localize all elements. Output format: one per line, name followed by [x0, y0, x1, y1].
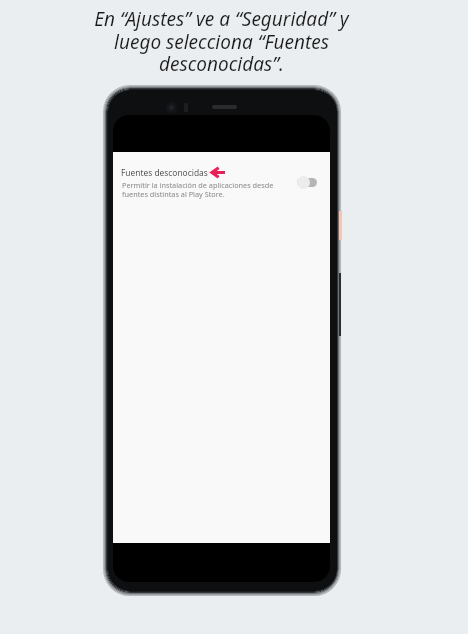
staticText: Permitir la instalación de aplicaciones … [122, 180, 274, 199]
staticText: En “Ajustes” ve a “Seguridad” y luego se… [0, 6, 443, 76]
button[interactable]: Fuentes desconocidas [113, 152, 330, 200]
staticText: Fuentes desconocidas [121, 167, 208, 178]
button[interactable]: Activar fuentes desconocidas [297, 175, 318, 189]
